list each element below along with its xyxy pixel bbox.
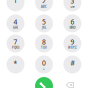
button[interactable]: 6: [63, 14, 81, 32]
button[interactable]: 2: [35, 0, 53, 11]
staticText: 5: [42, 17, 46, 26]
staticText: 6: [70, 17, 74, 26]
button[interactable]: 8: [35, 34, 53, 52]
staticText: GHI: [13, 26, 18, 29]
staticText: MNO: [69, 26, 75, 29]
staticText: #: [70, 58, 74, 67]
button[interactable]: 5: [35, 14, 53, 32]
staticText: JKL: [42, 26, 46, 29]
staticText: 0: [42, 58, 46, 67]
staticText: 8: [42, 37, 46, 46]
staticText: 9: [70, 37, 74, 46]
staticText: PQRS: [12, 46, 19, 49]
button[interactable]: Call: [35, 77, 53, 88]
staticText: *: [13, 58, 17, 67]
button[interactable]: *: [6, 55, 24, 73]
staticText: 1: [13, 0, 17, 5]
staticText: ABC: [41, 5, 47, 8]
button[interactable]: 0: [35, 55, 53, 73]
staticText: +: [43, 67, 45, 70]
staticText: TUV: [41, 46, 47, 49]
staticText: WXYZ: [68, 46, 77, 49]
button[interactable]: 7: [6, 34, 24, 52]
staticText: 7: [13, 37, 17, 46]
button[interactable]: #: [63, 55, 81, 73]
staticText: DEF: [70, 5, 74, 8]
button[interactable]: 1: [6, 0, 24, 11]
button[interactable]: 3: [63, 0, 81, 11]
button[interactable]: 4: [6, 14, 24, 32]
button[interactable]: Delete: [61, 76, 79, 88]
staticText: 3: [70, 0, 74, 5]
staticText: 2: [42, 0, 46, 5]
button[interactable]: 9: [63, 34, 81, 52]
staticText: 4: [13, 17, 17, 26]
